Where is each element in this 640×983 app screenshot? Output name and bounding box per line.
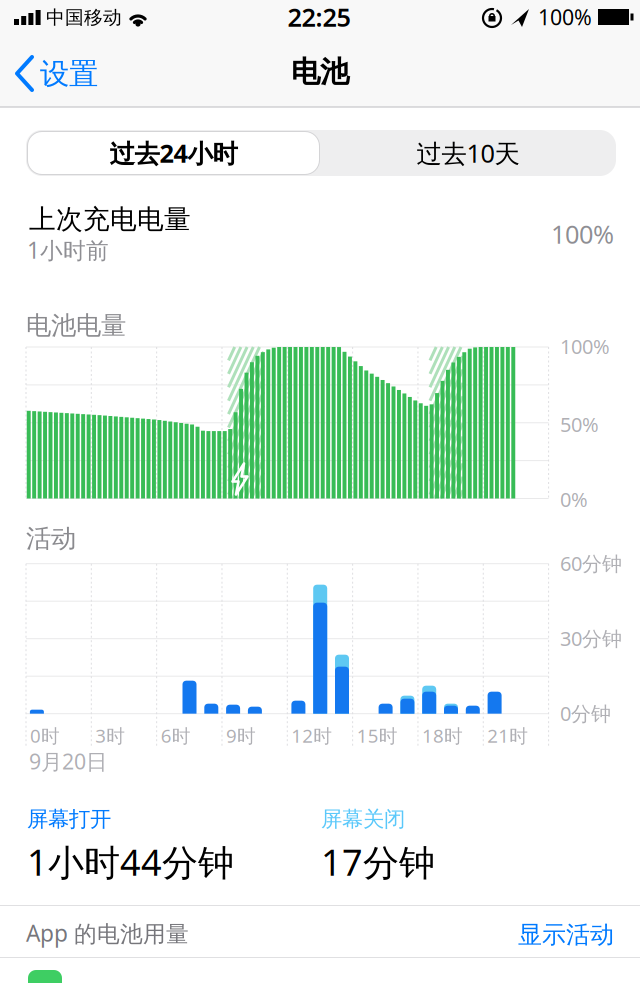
staticText: 设置	[40, 56, 98, 92]
staticText: 电池电量	[26, 310, 126, 341]
staticText: 显示活动	[518, 920, 614, 949]
staticText: 过去10天	[416, 136, 519, 170]
button[interactable]: 显示活动	[0, 920, 640, 949]
staticText: 过去24小时	[109, 136, 237, 170]
staticText: 0%	[560, 486, 588, 513]
staticText: 1小时44分钟	[27, 838, 234, 886]
staticText: 60分钟	[560, 550, 622, 577]
staticText: 上次充电电量	[29, 203, 191, 236]
staticText: 100%	[560, 333, 610, 360]
staticText: 0分钟	[560, 700, 611, 727]
staticText: 50%	[560, 411, 599, 438]
staticText: 6时	[161, 723, 191, 748]
staticText: 100%	[538, 3, 592, 31]
staticText: App 的电池用量	[26, 918, 189, 948]
staticText: 活动	[26, 523, 76, 554]
staticText: 屏幕打开	[27, 806, 111, 832]
button[interactable]: 微信	[28, 970, 62, 983]
staticText: 9时	[226, 723, 256, 748]
staticText: 1小时前	[27, 235, 109, 265]
staticText: 15时	[357, 723, 398, 748]
staticText: 12时	[291, 723, 332, 748]
button[interactable]: 过去24小时	[27, 131, 320, 175]
staticText: 9月20日	[29, 747, 107, 775]
staticText: 30分钟	[560, 625, 622, 652]
staticText: 22:25	[287, 0, 350, 34]
staticText: 0时	[30, 723, 60, 748]
staticText: 17分钟	[321, 838, 435, 886]
button[interactable]: 返回设置	[0, 0, 120, 60]
staticText: 中国移动	[46, 6, 122, 29]
staticText: 100%	[551, 217, 614, 251]
staticText: 21时	[487, 723, 528, 748]
staticText: 屏幕关闭	[321, 806, 405, 832]
staticText: 18时	[422, 723, 463, 748]
staticText: 3时	[95, 723, 125, 748]
staticText: 电池	[291, 54, 349, 90]
button[interactable]: 过去10天	[323, 133, 613, 173]
